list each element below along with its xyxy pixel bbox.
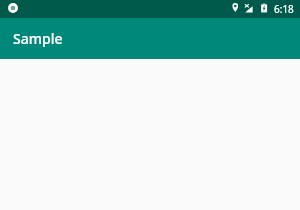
staticText: 6:18 <box>274 2 294 16</box>
other: Notification <box>8 3 18 13</box>
staticText: Sample <box>13 29 63 48</box>
other: System status icons <box>231 0 269 18</box>
button[interactable]: Sample <box>0 18 300 59</box>
